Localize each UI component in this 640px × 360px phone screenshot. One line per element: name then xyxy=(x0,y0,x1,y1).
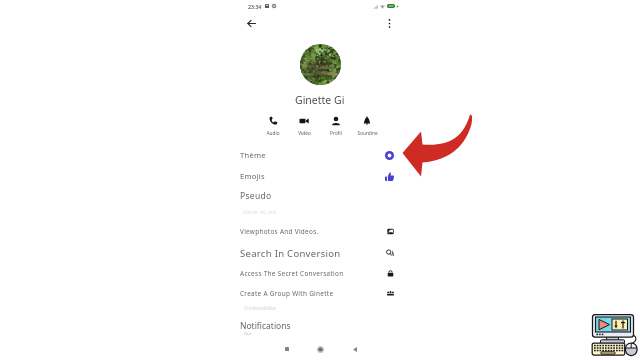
staticText: Notifications xyxy=(240,320,291,332)
staticText: Sourdine xyxy=(357,130,378,137)
button[interactable]: More options xyxy=(381,15,397,31)
button[interactable]: Back xyxy=(348,342,362,356)
button[interactable]: Recent apps xyxy=(280,342,294,356)
button[interactable]: Notifications xyxy=(240,320,410,338)
button[interactable]: Profile photo xyxy=(300,44,341,85)
button[interactable]: Create A Group With Ginette xyxy=(235,285,405,301)
button[interactable]: Profil xyxy=(321,116,351,137)
button[interactable]: Thème xyxy=(235,147,405,163)
staticText: Access The Secret Conversation xyxy=(240,269,344,278)
button[interactable]: Vidéo xyxy=(289,116,319,137)
staticText: Admin AG ons xyxy=(243,209,277,216)
staticText: Thème xyxy=(240,150,266,160)
button[interactable]: Access The Secret Conversation xyxy=(235,265,405,281)
staticText: Viewphotos And Videos. xyxy=(240,227,319,236)
staticText: Vidéo xyxy=(298,130,311,137)
staticText: Confidentialite xyxy=(244,305,276,311)
staticText: Audio xyxy=(266,130,280,137)
button[interactable]: Emojis xyxy=(235,168,405,184)
staticText: Profil xyxy=(330,130,342,137)
button[interactable]: Sourdine xyxy=(352,116,382,137)
staticText: Create A Group With Ginette xyxy=(240,289,334,298)
staticText: Ginette Gi xyxy=(295,93,345,107)
staticText: Oui xyxy=(244,331,251,337)
staticText: Emojis xyxy=(240,171,265,181)
button[interactable]: Search In Conversion xyxy=(235,245,405,261)
staticText: Pseudo xyxy=(240,190,272,202)
button[interactable]: Viewphotos And Videos. xyxy=(235,223,405,239)
button[interactable]: Audio xyxy=(258,116,288,137)
staticText: Search In Conversion xyxy=(240,247,341,260)
button[interactable]: Back xyxy=(243,15,259,31)
button[interactable]: Pseudo xyxy=(235,188,405,204)
staticText: 23:34 xyxy=(248,3,262,10)
button[interactable]: Home xyxy=(313,342,327,356)
